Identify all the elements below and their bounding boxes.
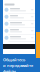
staticText: и передавайте [3, 63, 33, 68]
staticText: файлы [3, 69, 16, 72]
staticText: Общайтесь [3, 57, 25, 62]
